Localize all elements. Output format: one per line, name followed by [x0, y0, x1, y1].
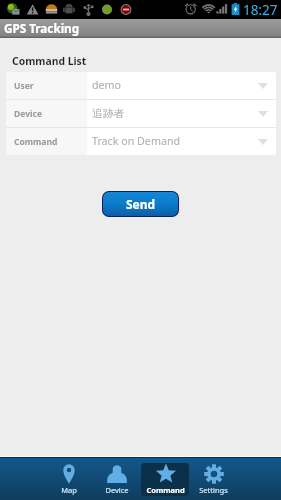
- staticText: GPS Tracking: [4, 20, 80, 36]
- button[interactable]: Command: [141, 463, 189, 496]
- button[interactable]: Settings: [189, 463, 237, 496]
- staticText: User: [14, 80, 34, 92]
- staticText: Device: [14, 108, 42, 120]
- staticText: 追跡者: [92, 107, 125, 120]
- staticText: demo: [92, 78, 122, 93]
- staticText: Command List: [12, 54, 87, 68]
- button[interactable]: Device: [6, 100, 276, 127]
- staticText: Settings: [199, 485, 228, 495]
- staticText: Send: [126, 196, 156, 212]
- staticText: Track on Demand: [92, 134, 181, 149]
- button[interactable]: User: [6, 72, 276, 99]
- staticText: Map: [61, 485, 77, 495]
- staticText: Device: [105, 485, 129, 495]
- button[interactable]: Command: [6, 128, 276, 155]
- button[interactable]: Map: [45, 463, 93, 496]
- button[interactable]: Device: [93, 463, 141, 496]
- staticText: Command: [14, 136, 58, 148]
- button[interactable]: Send: [103, 192, 178, 216]
- staticText: 18:27: [243, 1, 278, 19]
- staticText: Command: [146, 485, 185, 495]
